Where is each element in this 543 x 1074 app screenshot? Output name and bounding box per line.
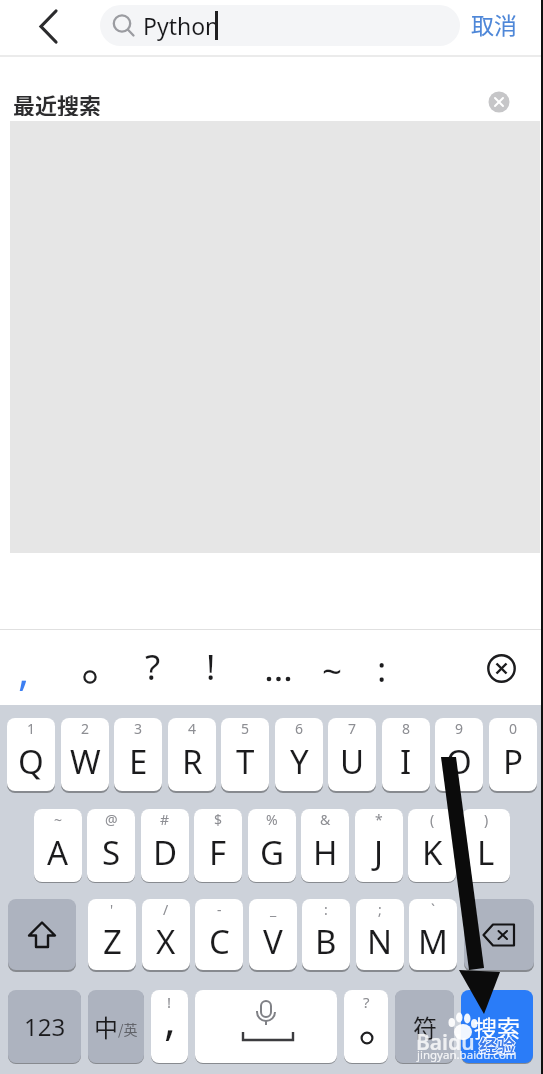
button[interactable]: ~ [312, 630, 352, 704]
staticText: A [47, 830, 69, 875]
staticText: V [263, 919, 283, 964]
staticText: ~ [54, 810, 63, 829]
staticText: Baidu [416, 1028, 475, 1057]
button[interactable]: $ [194, 809, 242, 882]
button[interactable]: 取消 [462, 3, 526, 44]
button[interactable]: % [248, 809, 296, 882]
staticText: 最近搜索 [13, 88, 102, 116]
button[interactable]: & [301, 809, 349, 882]
staticText: J [374, 830, 384, 875]
staticText: L [477, 830, 495, 875]
button[interactable]: ` [409, 899, 457, 970]
button[interactable]: ; [356, 899, 404, 970]
staticText: ? [145, 643, 161, 691]
staticText: U [340, 739, 365, 784]
button[interactable]: 6 [275, 718, 323, 791]
staticText: F [209, 830, 227, 875]
staticText: , [164, 990, 176, 1048]
button[interactable] [8, 899, 76, 970]
button[interactable]: / [142, 899, 190, 970]
staticText: T [236, 739, 255, 784]
staticText: K [422, 830, 443, 875]
staticText: 搜索 [474, 1010, 520, 1043]
button[interactable]: 搜索 [461, 990, 533, 1063]
staticText: 4 [188, 719, 197, 738]
staticText: P [503, 739, 523, 784]
staticText: 2 [81, 719, 90, 738]
button[interactable]: 7 [328, 718, 376, 791]
staticText: D [153, 830, 178, 875]
button[interactable]: ! [151, 990, 188, 1063]
button[interactable]: : [302, 899, 350, 970]
staticText: 符 [413, 1009, 437, 1044]
staticText: 3 [134, 719, 143, 738]
button[interactable] [36, 8, 62, 46]
staticText: 1 [27, 719, 36, 738]
button[interactable]: - [195, 899, 243, 970]
button[interactable]: 1 [7, 718, 55, 791]
staticText: N [367, 919, 393, 964]
staticText: Python [143, 10, 220, 41]
button[interactable]: 9 [435, 718, 483, 791]
button[interactable] [78, 666, 102, 690]
button[interactable] [464, 899, 534, 970]
staticText: 中 [94, 1009, 118, 1044]
staticText: & [320, 810, 331, 829]
staticText: 7 [348, 719, 357, 738]
staticText: # [160, 810, 170, 829]
staticText: 经验 [478, 1032, 514, 1058]
staticText: 8 [402, 719, 411, 738]
button[interactable]: 3 [114, 718, 162, 791]
staticText: : [377, 645, 387, 693]
button[interactable]: ! [191, 630, 231, 704]
button[interactable]: , [4, 630, 44, 704]
button[interactable]: : [362, 630, 402, 704]
staticText: - [217, 900, 222, 919]
staticText: ( [430, 810, 435, 829]
staticText: S [102, 830, 121, 875]
button[interactable]: ~ [34, 809, 82, 882]
staticText: 0 [509, 719, 518, 738]
button[interactable]: ) [462, 809, 510, 882]
button[interactable]: ( [408, 809, 456, 882]
button[interactable]: * [355, 809, 403, 882]
staticText: jingyan.baidu.com [417, 1047, 517, 1063]
button[interactable]: 5 [221, 718, 269, 791]
button[interactable]: ? [344, 990, 388, 1063]
button[interactable] [487, 654, 516, 683]
staticText: 经验 [480, 1032, 516, 1058]
staticText: ` [431, 900, 435, 919]
staticText: R [182, 739, 203, 784]
staticText: /英 [118, 1019, 138, 1039]
button[interactable]: # [141, 809, 189, 882]
staticText: M [418, 919, 448, 964]
button[interactable]: 123 [8, 990, 81, 1063]
button[interactable] [100, 5, 460, 46]
staticText: Q [18, 739, 44, 784]
button[interactable]: 8 [382, 718, 430, 791]
button[interactable]: 符 [395, 990, 454, 1063]
button[interactable]: 中 [88, 990, 144, 1063]
button[interactable]: ? [133, 630, 173, 704]
button[interactable]: @ [87, 809, 135, 882]
staticText: 取消 [471, 7, 517, 40]
staticText: 123 [24, 1010, 66, 1043]
button[interactable]: _ [249, 899, 297, 970]
staticText: 6 [295, 719, 304, 738]
staticText: * [375, 810, 383, 829]
staticText: ~ [322, 647, 343, 695]
staticText: C [209, 919, 230, 964]
staticText: / [163, 900, 169, 919]
staticText: B [315, 919, 337, 964]
button[interactable] [488, 91, 510, 113]
staticText: _ [270, 900, 277, 919]
button[interactable]: 2 [61, 718, 109, 791]
button[interactable]: 4 [168, 718, 216, 791]
button[interactable] [264, 670, 296, 686]
staticText: G [260, 830, 285, 875]
button[interactable] [195, 990, 337, 1063]
button[interactable]: 0 [489, 718, 537, 791]
staticText: ; [378, 900, 382, 919]
staticText: O [446, 739, 472, 784]
button[interactable]: ' [88, 899, 136, 970]
